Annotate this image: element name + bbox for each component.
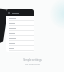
staticText: for everyone	[25, 62, 40, 65]
staticText: Simple settings	[23, 58, 42, 62]
button[interactable]	[6, 16, 34, 20]
button[interactable]	[6, 21, 34, 25]
button[interactable]	[6, 31, 34, 35]
button[interactable]: Toolbar	[6, 9, 34, 16]
button[interactable]	[6, 46, 34, 50]
button[interactable]	[6, 36, 34, 40]
button[interactable]	[6, 41, 34, 45]
button[interactable]	[6, 26, 34, 30]
